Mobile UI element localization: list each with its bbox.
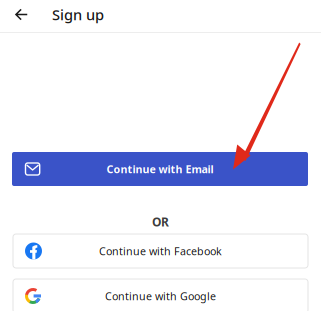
staticText: Continue with Email — [106, 162, 213, 176]
staticText: Sign up — [52, 5, 104, 24]
staticText: Continue with Google — [105, 289, 216, 303]
button[interactable]: Continue with Facebook — [13, 234, 308, 268]
staticText: OR — [152, 214, 169, 230]
button[interactable]: Back — [0, 0, 43, 29]
button[interactable]: Continue with Google — [13, 279, 308, 311]
staticText: Continue with Facebook — [99, 244, 222, 258]
button[interactable]: Continue with Email — [12, 152, 308, 186]
